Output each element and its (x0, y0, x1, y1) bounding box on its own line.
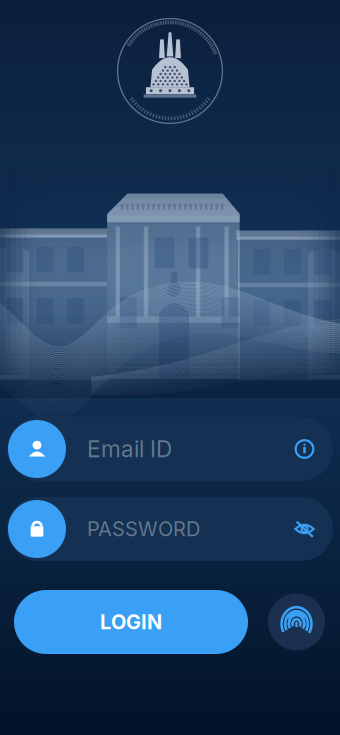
staticText: LOGIN (100, 610, 162, 634)
button[interactable]: Sign in with fingerprint (268, 593, 325, 650)
staticText: Email ID (87, 435, 172, 463)
button[interactable]: LOGIN (14, 590, 248, 654)
button[interactable]: PASSWORD (0, 497, 340, 561)
button[interactable]: Email ID (0, 417, 340, 481)
staticText: PASSWORD (87, 517, 200, 541)
